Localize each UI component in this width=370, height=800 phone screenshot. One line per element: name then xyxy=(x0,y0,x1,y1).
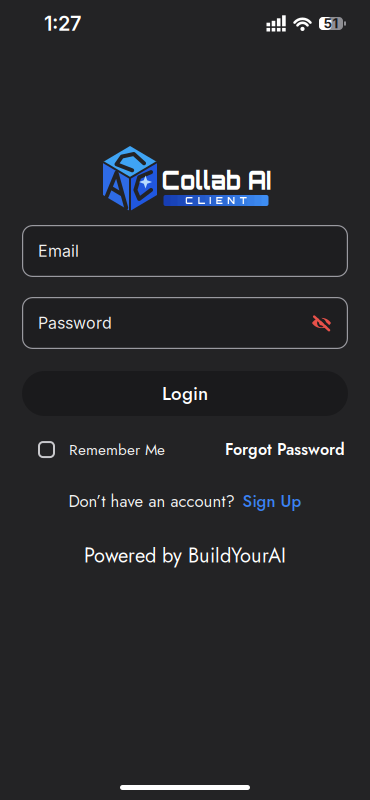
staticText: CLIENT xyxy=(185,195,247,206)
button[interactable]: Login xyxy=(22,371,348,416)
staticText: Password xyxy=(38,314,112,332)
staticText: Remember Me xyxy=(69,438,165,461)
staticText: Don’t have an account? xyxy=(68,489,234,513)
staticText: Sign Up xyxy=(242,489,301,513)
staticText: Email xyxy=(38,242,79,260)
button[interactable]: Email xyxy=(22,225,348,277)
staticText: 51 xyxy=(323,16,338,31)
button[interactable]: Password xyxy=(22,297,348,349)
button[interactable]: Remember Me xyxy=(38,438,165,461)
staticText: Forgot Password xyxy=(225,438,345,461)
button[interactable]: Show password xyxy=(311,315,348,331)
staticText: Collab AI xyxy=(154,164,278,196)
button[interactable]: Sign Up xyxy=(242,489,301,513)
staticText: 1:27 xyxy=(44,12,81,35)
staticText: Powered by BuildYourAI xyxy=(84,541,286,570)
button[interactable]: Forgot Password xyxy=(225,438,345,461)
staticText: Login xyxy=(162,380,208,407)
